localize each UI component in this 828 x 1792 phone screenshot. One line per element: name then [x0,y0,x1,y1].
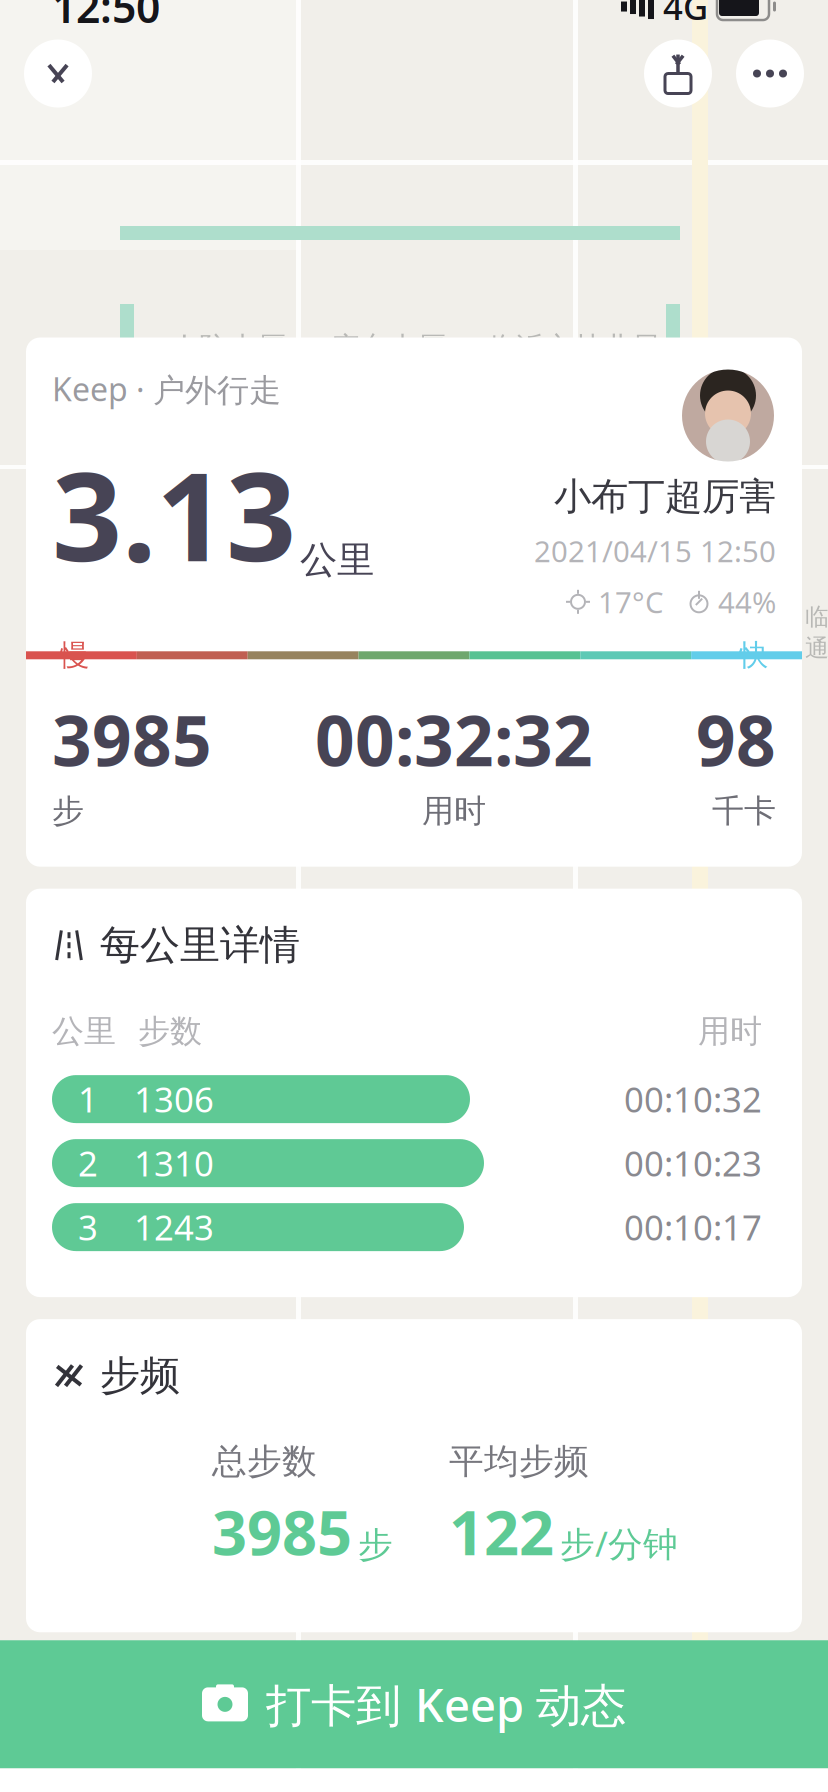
staticText: 4G [663,0,708,29]
staticText: 临沂市林业局 [486,330,660,366]
staticText: 步/分钟 [560,1520,678,1566]
staticText: 公里 [300,537,374,583]
staticText: 1243 [134,1204,214,1250]
staticText: 1310 [134,1140,214,1186]
staticText: 3985 [52,693,212,785]
staticText: 98 [696,693,776,785]
button[interactable]: More options [736,39,804,107]
staticText: 平均步频 [449,1440,589,1483]
staticText: 2 [78,1140,98,1186]
staticText: 2021/04/15 12:50 [534,531,776,570]
staticText: 步数 [138,1012,202,1051]
staticText: 千卡 [712,791,776,831]
staticText: 府东大厦 [330,330,446,366]
staticText: 00:10:17 [624,1204,762,1250]
staticText: 44% [718,582,776,621]
staticText: 12:50 [52,0,160,35]
staticText: 公里 [52,1012,116,1051]
staticText: 小布丁超厉害 [554,473,776,519]
staticText: 00:32:32 [315,693,593,785]
staticText: 122 [449,1491,554,1572]
staticText: 步 [358,1524,393,1566]
staticText: 用时 [422,791,486,831]
staticText: 用时 [698,1012,762,1051]
staticText: Keep · 户外行走 [52,367,281,410]
staticText: 3.13 [52,432,296,595]
staticText: 慢 [60,637,89,673]
button[interactable]: 打卡到 Keep 动态 [0,1640,828,1768]
staticText: 步 [52,791,84,831]
staticText: 步频 [100,1351,180,1400]
staticText: 通 [805,633,828,663]
staticText: 临 [805,602,828,631]
staticText: 快 [739,637,768,673]
staticText: 每公里详情 [100,921,300,970]
button[interactable]: Share [644,39,712,107]
staticText: 1 [78,1076,98,1122]
staticText: 3 [78,1204,98,1250]
staticText: 17°C [598,582,664,621]
staticText: 00:10:32 [624,1076,762,1122]
button[interactable]: Collapse [24,39,92,107]
staticText: 打卡到 Keep 动态 [266,1674,626,1734]
staticText: 人防大厦 [170,330,286,366]
staticText: 3985 [212,1491,352,1572]
staticText: 总步数 [212,1440,317,1483]
staticText: 1306 [134,1076,214,1122]
staticText: 00:10:23 [624,1140,762,1186]
